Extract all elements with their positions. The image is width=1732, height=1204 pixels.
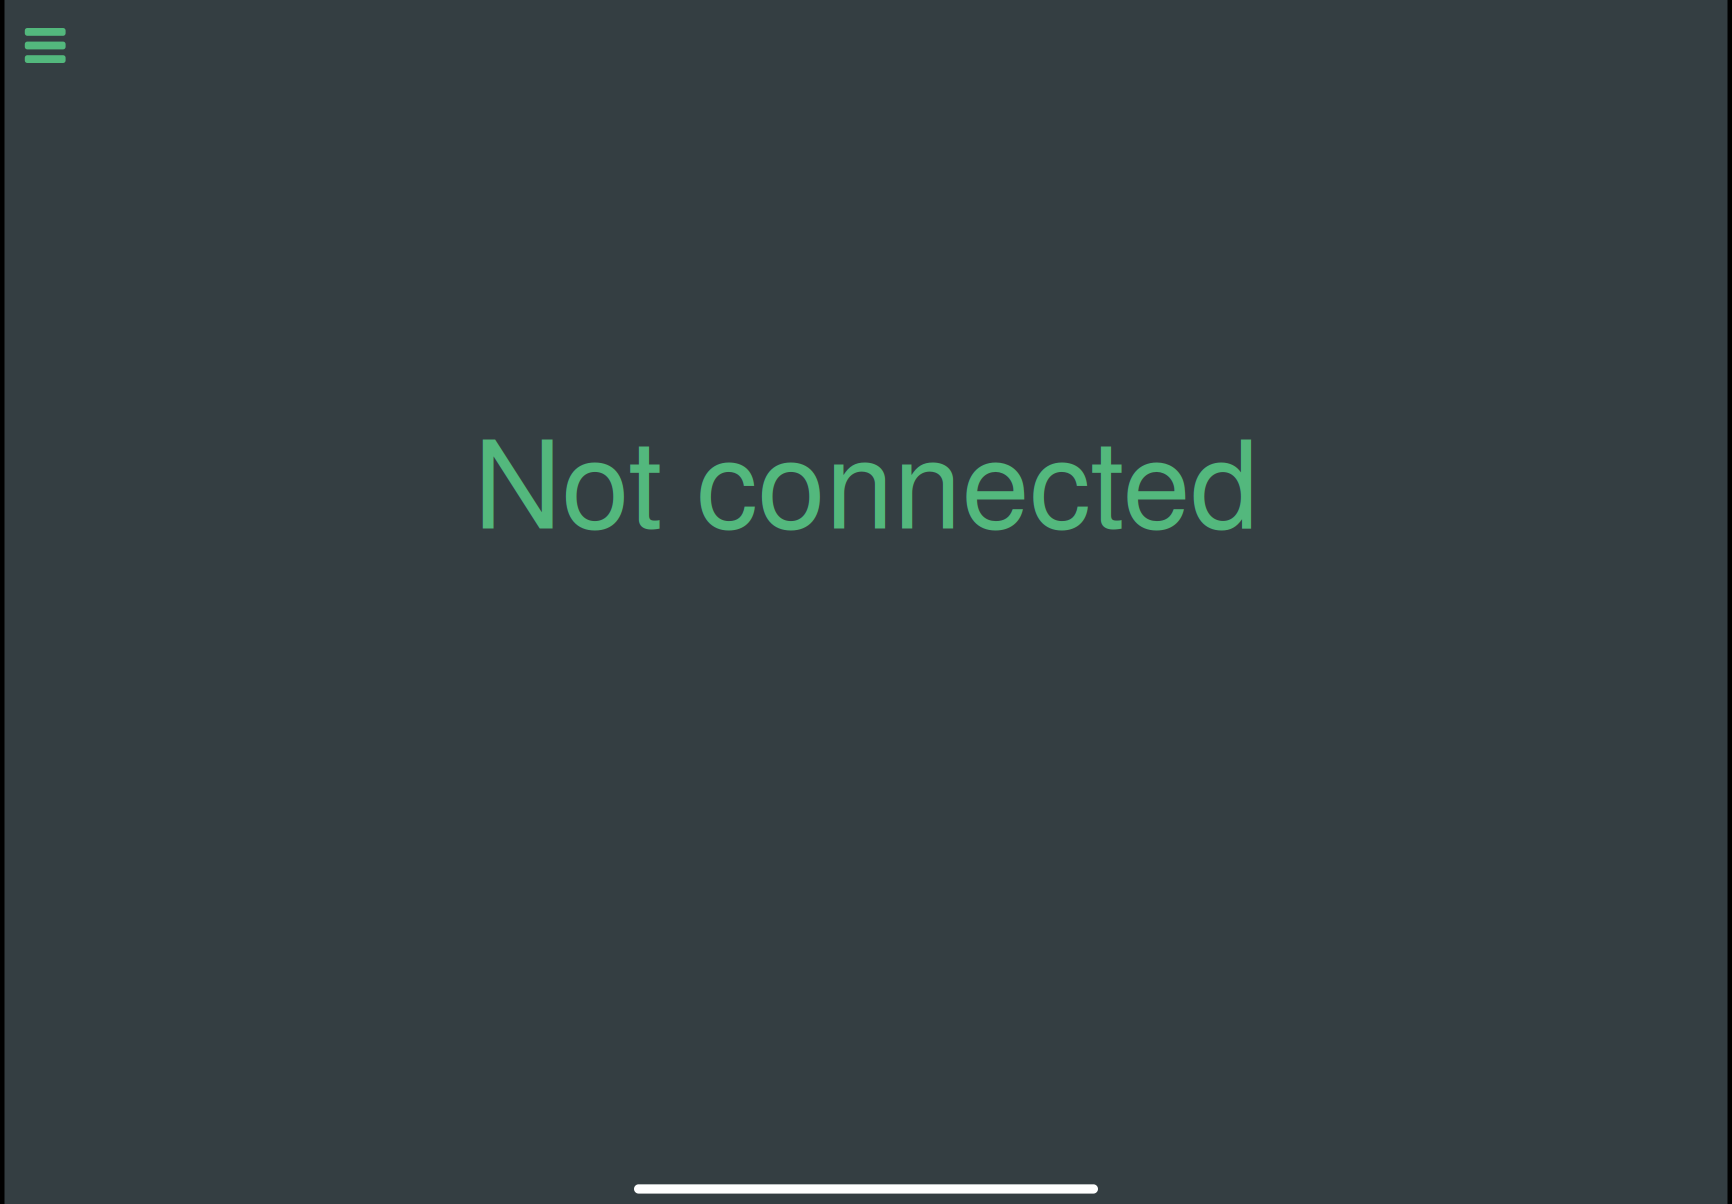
staticText: Not connected bbox=[473, 388, 1258, 563]
button[interactable]: Menu bbox=[4, 0, 88, 85]
